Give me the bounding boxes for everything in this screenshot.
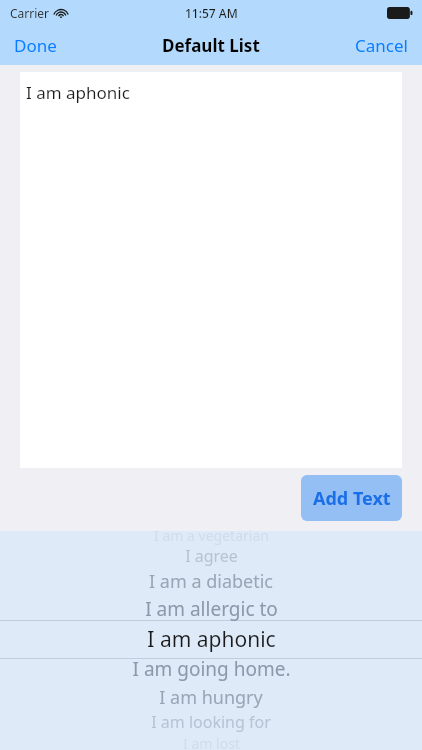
staticText: Carrier bbox=[10, 5, 50, 21]
button[interactable]: Cancel bbox=[355, 26, 408, 65]
staticText: I am a diabetic bbox=[149, 569, 273, 594]
staticText: I am looking for bbox=[151, 711, 271, 733]
button[interactable]: Done bbox=[14, 26, 57, 65]
button[interactable]: I am hungry bbox=[0, 682, 422, 712]
staticText: I am allergic to bbox=[145, 596, 278, 622]
staticText: Cancel bbox=[355, 34, 408, 57]
staticText: I am a vegetarian bbox=[154, 526, 269, 545]
button[interactable]: I am a vegetarian bbox=[0, 520, 422, 550]
staticText: I am hungry bbox=[159, 685, 263, 710]
button[interactable]: I am aphonic bbox=[0, 624, 422, 654]
staticText: I agree bbox=[185, 545, 238, 567]
staticText: I am going home. bbox=[132, 656, 291, 682]
button[interactable]: I agree bbox=[0, 541, 422, 571]
button[interactable]: I am a diabetic bbox=[0, 566, 422, 596]
button[interactable]: I am looking for bbox=[0, 707, 422, 737]
button[interactable]: I am going home. bbox=[0, 654, 422, 684]
staticText: I am aphonic bbox=[26, 81, 130, 104]
staticText: Default List bbox=[162, 34, 260, 57]
staticText: Done bbox=[14, 34, 57, 57]
button[interactable]: I am allergic to bbox=[0, 594, 422, 624]
staticText: I am aphonic bbox=[147, 625, 276, 654]
button[interactable]: Add Text bbox=[301, 475, 402, 521]
button[interactable]: I am aphonic bbox=[20, 72, 402, 468]
staticText: Add Text bbox=[313, 486, 391, 511]
staticText: I am lost bbox=[183, 734, 240, 750]
staticText: 11:57 AM bbox=[185, 5, 238, 21]
